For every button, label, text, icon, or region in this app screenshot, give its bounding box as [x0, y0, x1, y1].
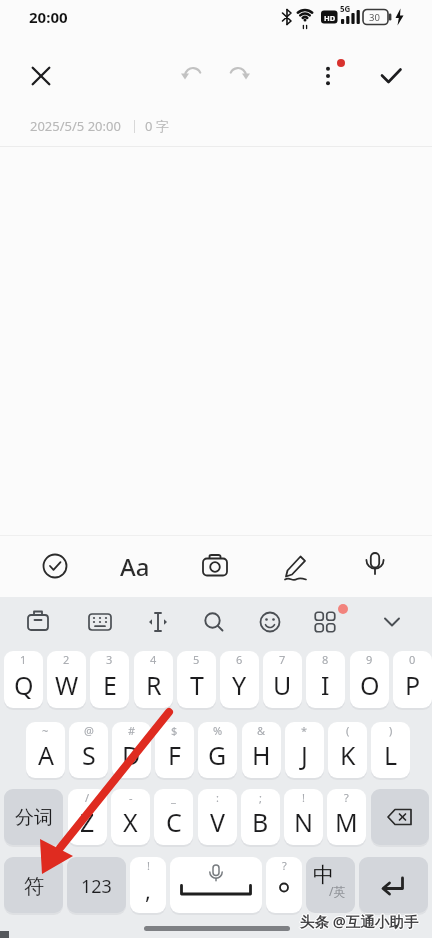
staticText: N: [294, 805, 314, 839]
button[interactable]: (: [328, 722, 367, 778]
button[interactable]: [274, 544, 318, 588]
button[interactable]: [33, 544, 77, 588]
staticText: /英: [329, 883, 346, 899]
button[interactable]: *: [285, 722, 324, 778]
staticText: &: [257, 723, 266, 738]
button[interactable]: _: [154, 789, 193, 845]
button[interactable]: ): [371, 722, 410, 778]
button[interactable]: [353, 543, 397, 587]
button[interactable]: 9: [350, 651, 389, 708]
button[interactable]: [77, 599, 123, 645]
staticText: !: [302, 790, 305, 805]
button[interactable]: !: [284, 789, 323, 845]
button[interactable]: 1: [4, 651, 43, 708]
button[interactable]: 0: [393, 651, 432, 708]
staticText: (: [346, 723, 350, 738]
staticText: 头条 @互通小助手: [300, 912, 419, 932]
button[interactable]: [216, 53, 260, 97]
staticText: ?: [344, 790, 349, 805]
button[interactable]: 7: [263, 651, 302, 708]
button[interactable]: [170, 857, 262, 913]
staticText: ): [389, 723, 393, 738]
button[interactable]: &: [242, 722, 281, 778]
button[interactable]: [371, 789, 429, 845]
staticText: 2025/5/5 20:00: [30, 117, 121, 135]
staticText: 头条 @互通小助手: [299, 911, 418, 931]
button[interactable]: [191, 599, 237, 645]
staticText: 123: [81, 874, 112, 899]
staticText: P: [405, 668, 421, 702]
staticText: 6: [236, 652, 243, 667]
button[interactable]: ?: [266, 857, 302, 913]
button[interactable]: [306, 54, 350, 98]
button[interactable]: 分词: [4, 789, 63, 845]
button[interactable]: 2: [47, 651, 86, 708]
staticText: ;: [259, 790, 262, 805]
button[interactable]: ;: [241, 789, 280, 845]
button[interactable]: 5: [177, 651, 216, 708]
button[interactable]: @: [69, 722, 108, 778]
staticText: Y: [232, 668, 247, 702]
button[interactable]: [369, 54, 413, 98]
staticText: E: [103, 668, 117, 702]
staticText: ~: [42, 723, 49, 738]
button[interactable]: [19, 54, 63, 98]
button[interactable]: ~: [26, 722, 65, 778]
staticText: %: [213, 723, 223, 738]
staticText: O: [360, 668, 380, 702]
staticText: ,: [145, 875, 151, 905]
staticText: 4: [150, 652, 157, 667]
button[interactable]: 3: [90, 651, 129, 708]
staticText: H: [252, 738, 271, 772]
button[interactable]: [247, 599, 293, 645]
button[interactable]: 123: [67, 857, 126, 913]
staticText: 30: [369, 11, 380, 24]
staticText: ?: [282, 858, 287, 873]
staticText: _: [171, 790, 176, 805]
button[interactable]: Aa: [113, 544, 157, 588]
button[interactable]: [135, 599, 181, 645]
button[interactable]: :: [198, 789, 237, 845]
staticText: D: [122, 738, 141, 772]
staticText: W: [55, 668, 79, 702]
button[interactable]: 6: [220, 651, 259, 708]
staticText: X: [123, 805, 138, 839]
staticText: @: [84, 723, 94, 738]
button[interactable]: [302, 599, 348, 645]
staticText: C: [166, 805, 182, 839]
staticText: 7: [279, 652, 286, 667]
button[interactable]: [359, 857, 428, 913]
staticText: :: [216, 790, 219, 805]
staticText: J: [301, 738, 308, 772]
staticText: 9: [366, 652, 373, 667]
staticText: $: [171, 723, 178, 738]
button[interactable]: ?: [327, 789, 366, 845]
staticText: 20:00: [29, 7, 68, 27]
staticText: F: [168, 738, 181, 772]
button[interactable]: -: [111, 789, 150, 845]
staticText: L: [384, 738, 398, 772]
button[interactable]: 符: [4, 857, 63, 913]
button[interactable]: !: [130, 857, 166, 913]
staticText: Z: [80, 805, 95, 839]
button[interactable]: 中: [306, 857, 355, 913]
staticText: 0 字: [145, 117, 169, 135]
button[interactable]: %: [198, 722, 237, 778]
staticText: 5G: [340, 3, 351, 14]
button[interactable]: [193, 544, 237, 588]
staticText: U: [273, 668, 292, 702]
button[interactable]: [171, 53, 215, 97]
staticText: M: [335, 805, 358, 839]
staticText: !: [147, 858, 150, 873]
staticText: *: [301, 723, 308, 738]
button[interactable]: $: [155, 722, 194, 778]
staticText: A: [38, 738, 54, 772]
button[interactable]: [369, 599, 415, 645]
button[interactable]: /: [68, 789, 107, 845]
staticText: 1: [20, 652, 27, 667]
button[interactable]: 8: [306, 651, 345, 708]
staticText: 8: [322, 652, 329, 667]
button[interactable]: [15, 599, 61, 645]
button[interactable]: #: [112, 722, 151, 778]
button[interactable]: 4: [134, 651, 173, 708]
